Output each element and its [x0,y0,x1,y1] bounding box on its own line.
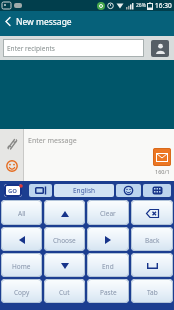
button[interactable]: Back [131,227,173,251]
button[interactable] [4,136,19,151]
staticText: GO [8,187,18,195]
button[interactable]: Enter recipients [3,39,144,57]
button[interactable] [131,253,173,277]
button[interactable] [143,184,171,197]
button[interactable] [153,148,171,166]
staticText: 26% [136,2,146,9]
staticText: Enter message [28,136,77,146]
button[interactable]: Home [1,253,42,277]
button[interactable]: New message [0,11,174,32]
staticText: Choose [53,236,76,245]
button[interactable]: English [54,184,114,197]
button[interactable]: All [1,200,42,225]
button[interactable] [5,159,19,173]
staticText: All [18,209,26,218]
button[interactable]: Tab [131,279,173,303]
button[interactable]: Copy [1,279,42,303]
button[interactable]: End [87,253,129,277]
staticText: Home [12,262,31,271]
button[interactable] [29,184,52,197]
staticText: 160/1 [155,168,170,175]
staticText: 16:30 [155,1,172,10]
staticText: Copy [14,288,30,297]
button[interactable] [87,227,129,251]
button[interactable] [44,200,85,225]
staticText: Clear [100,209,116,218]
staticText: Cut [59,288,70,297]
button[interactable]: Cut [44,279,85,303]
staticText: Enter recipients [7,44,55,53]
button[interactable]: Paste [87,279,129,303]
staticText: Back [145,236,160,245]
button[interactable] [116,184,141,197]
button[interactable] [151,40,169,57]
staticText: End [102,262,114,271]
staticText: Tab [147,288,158,297]
button[interactable]: Clear [87,200,129,225]
button[interactable]: Choose [44,227,85,251]
staticText: Paste [100,288,117,297]
button[interactable] [44,253,85,277]
button[interactable] [131,200,173,225]
button[interactable] [1,227,42,251]
staticText: English [73,186,96,195]
staticText: New message [16,16,72,28]
button[interactable]: GO [4,184,23,197]
button[interactable]: Enter message [24,129,174,181]
